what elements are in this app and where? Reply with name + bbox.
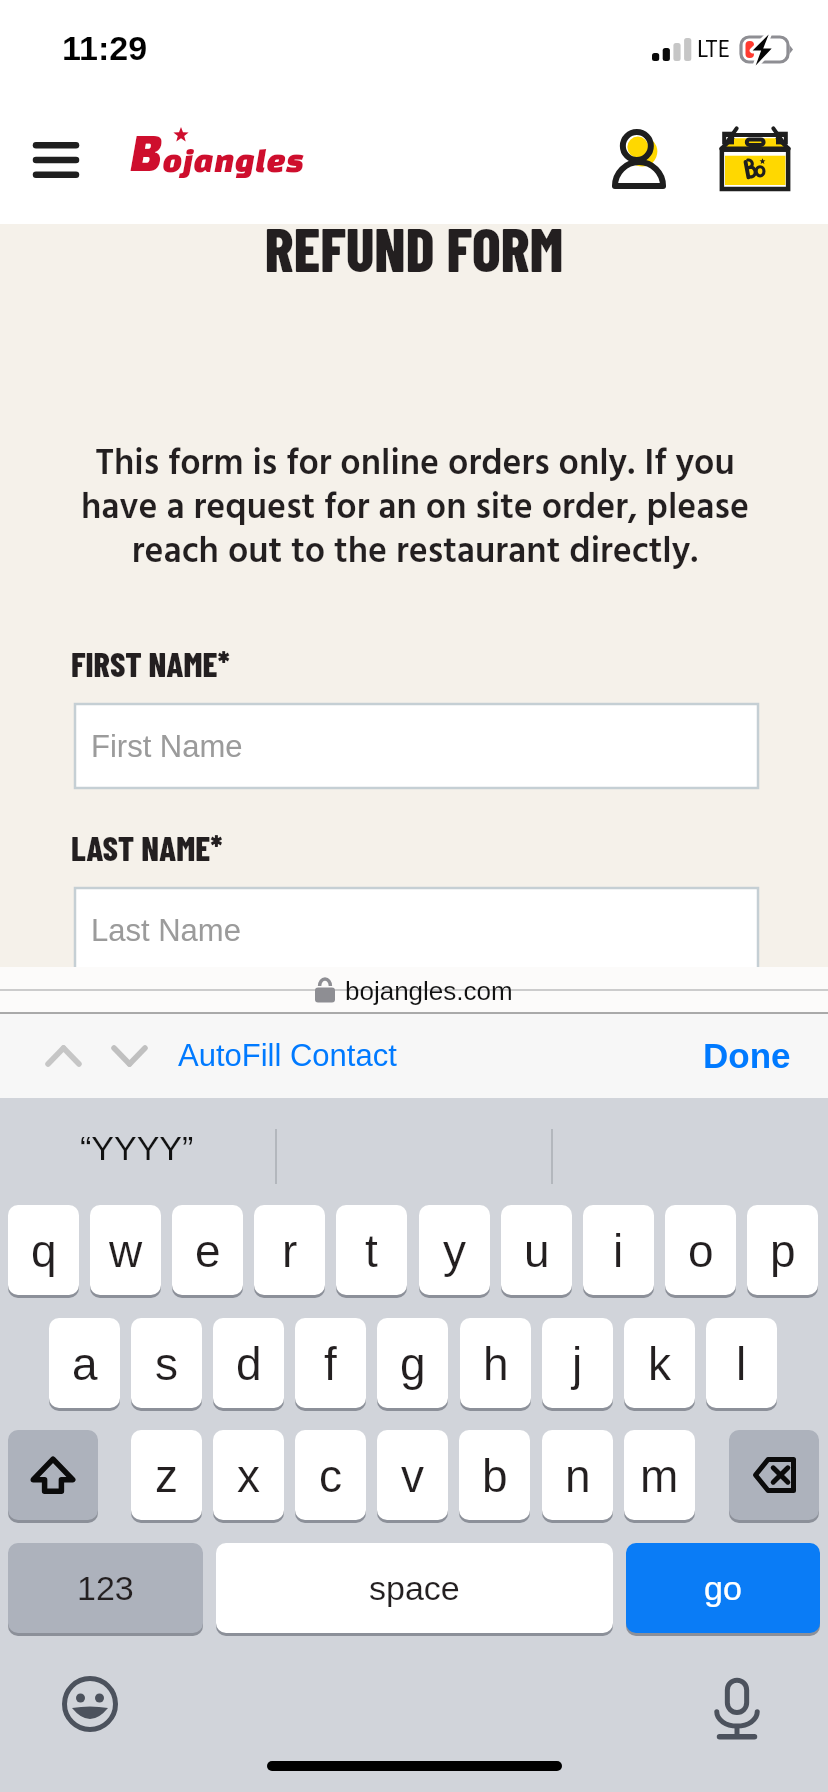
staticText: m: [640, 1450, 679, 1501]
button[interactable]: k: [624, 1318, 695, 1408]
button[interactable]: Next field: [96, 1023, 162, 1089]
button[interactable]: x: [213, 1430, 284, 1520]
staticText: space: [369, 1569, 460, 1607]
button[interactable]: 123: [8, 1543, 203, 1633]
staticText: LAST NAME*: [71, 827, 223, 868]
staticText: r: [282, 1225, 298, 1276]
staticText: bojangles.com: [345, 976, 513, 1005]
button[interactable]: a: [49, 1318, 120, 1408]
staticText: “YYYY”: [80, 1129, 194, 1167]
staticText: j: [572, 1338, 583, 1389]
staticText: a: [72, 1338, 98, 1389]
staticText: go: [704, 1569, 742, 1607]
staticText: k: [648, 1338, 671, 1389]
button[interactable]: r: [254, 1205, 325, 1295]
staticText: AutoFill Contact: [178, 1038, 397, 1073]
button[interactable]: c: [295, 1430, 366, 1520]
button[interactable]: n: [542, 1430, 613, 1520]
staticText: Done: [703, 1036, 791, 1075]
staticText: w: [109, 1225, 143, 1276]
staticText: o: [688, 1225, 714, 1276]
button[interactable]: Done: [678, 1013, 828, 1098]
button[interactable]: Open menu: [13, 121, 99, 199]
staticText: z: [155, 1450, 178, 1501]
button[interactable]: Backspace: [729, 1430, 819, 1520]
button[interactable]: s: [131, 1318, 202, 1408]
button[interactable]: p: [747, 1205, 818, 1295]
staticText: e: [195, 1225, 221, 1276]
button[interactable]: Previous field: [30, 1023, 96, 1089]
button[interactable]: g: [377, 1318, 448, 1408]
button[interactable]: l: [706, 1318, 777, 1408]
button[interactable]: j: [542, 1318, 613, 1408]
button[interactable]: q: [8, 1205, 79, 1295]
button[interactable]: Shift: [8, 1430, 98, 1520]
staticText: This form is for online orders only. If …: [64, 436, 766, 582]
staticText: p: [770, 1225, 796, 1276]
button[interactable]: w: [90, 1205, 161, 1295]
button[interactable]: f: [295, 1318, 366, 1408]
staticText: First Name: [91, 729, 243, 764]
staticText: h: [483, 1338, 509, 1389]
button[interactable]: e: [172, 1205, 243, 1295]
button[interactable]: o: [665, 1205, 736, 1295]
staticText: FIRST NAME*: [71, 643, 230, 684]
button[interactable]: i: [583, 1205, 654, 1295]
button[interactable]: z: [131, 1430, 202, 1520]
button[interactable]: b: [459, 1430, 530, 1520]
staticText: n: [565, 1450, 591, 1501]
button[interactable]: space: [216, 1543, 613, 1633]
staticText: v: [401, 1450, 424, 1501]
staticText: l: [736, 1338, 747, 1389]
staticText: 123: [77, 1569, 134, 1607]
staticText: b: [482, 1450, 508, 1501]
staticText: i: [613, 1225, 624, 1276]
staticText: d: [236, 1338, 262, 1389]
button[interactable]: t: [336, 1205, 407, 1295]
button[interactable]: Account: [597, 121, 681, 199]
staticText: f: [324, 1338, 337, 1389]
button[interactable]: d: [213, 1318, 284, 1408]
staticText: s: [155, 1338, 178, 1389]
staticText: u: [524, 1225, 550, 1276]
staticText: LTE: [697, 35, 730, 63]
button[interactable]: u: [501, 1205, 572, 1295]
staticText: x: [237, 1450, 260, 1501]
button[interactable]: y: [419, 1205, 490, 1295]
button[interactable]: m: [624, 1430, 695, 1520]
button[interactable]: go: [626, 1543, 820, 1633]
staticText: ojangles: [162, 141, 305, 178]
staticText: B: [130, 122, 163, 181]
staticText: 11:29: [62, 29, 148, 67]
staticText: REFUND FORM: [0, 212, 828, 284]
staticText: y: [443, 1225, 466, 1276]
staticText: c: [319, 1450, 342, 1501]
button[interactable]: v: [377, 1430, 448, 1520]
button[interactable]: Order bag: [700, 121, 810, 197]
staticText: Last Name: [91, 913, 241, 948]
staticText: q: [31, 1225, 57, 1276]
button[interactable]: Emoji keyboard: [50, 1664, 130, 1744]
button[interactable]: Last Name: [75, 888, 758, 972]
button[interactable]: Bojangles home: [126, 116, 306, 202]
button[interactable]: First Name: [75, 704, 758, 788]
staticText: g: [400, 1338, 426, 1389]
button[interactable]: h: [460, 1318, 531, 1408]
button[interactable]: AutoFill Contact: [168, 1013, 418, 1098]
button[interactable]: Dictation: [697, 1668, 777, 1752]
staticText: t: [365, 1225, 378, 1276]
